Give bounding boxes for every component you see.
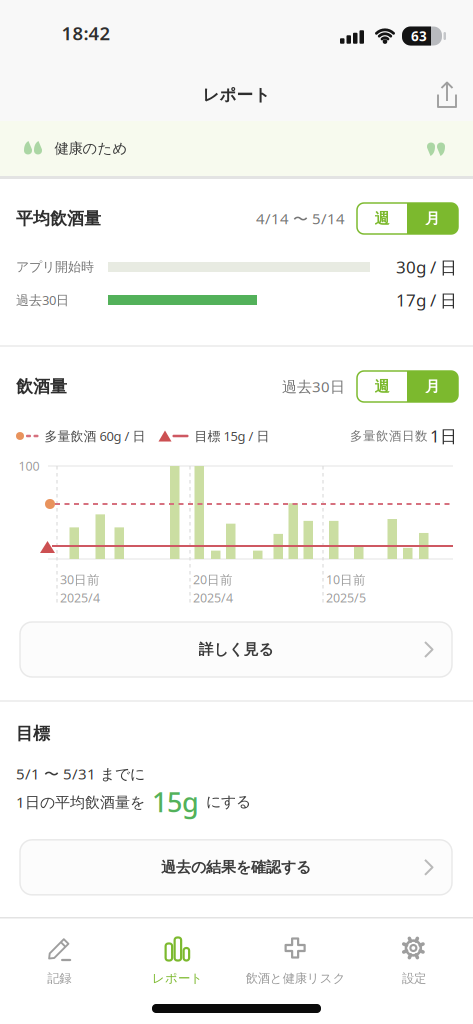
button[interactable]: 飲酒と健康リスク — [236, 934, 355, 986]
staticText: 週 — [374, 377, 389, 396]
button[interactable]: 詳しく見る — [20, 622, 452, 677]
staticText: 月 — [425, 377, 440, 396]
staticText: 過去30日 — [282, 376, 345, 397]
staticText: にする — [206, 792, 251, 811]
staticText: 多量飲酒 60g / 日 — [44, 427, 145, 445]
staticText: 多量飲酒日数 — [350, 428, 428, 444]
staticText: 目標 — [16, 723, 50, 744]
staticText: 18:42 — [61, 20, 110, 46]
staticText: レポート — [202, 85, 270, 105]
staticText: 1日の平均飲酒量を — [16, 792, 145, 812]
button[interactable]: 週 — [357, 203, 407, 234]
staticText: 記録 — [47, 970, 71, 986]
staticText: 4/14 〜 5/14 — [256, 208, 345, 229]
staticText: 健康のため — [54, 139, 127, 157]
staticText: 63 — [411, 27, 427, 45]
staticText: 15g — [152, 783, 199, 820]
button[interactable]: 過去の結果を確認する — [20, 840, 452, 895]
staticText: 設定 — [402, 970, 426, 986]
staticText: 1日 — [430, 424, 457, 448]
staticText: 飲酒量 — [16, 376, 67, 397]
staticText: 2025/4 — [193, 589, 233, 606]
staticText: 30g / 日 — [396, 255, 457, 279]
button[interactable]: 月 — [407, 203, 458, 234]
staticText: 5/1 〜 5/31 までに — [16, 763, 145, 784]
staticText: 目標 15g / 日 — [194, 427, 269, 445]
staticText: 詳しく見る — [198, 640, 273, 659]
staticText: 2025/5 — [326, 589, 366, 606]
staticText: レポート — [152, 970, 203, 986]
button[interactable]: Share — [435, 81, 459, 109]
button[interactable]: 月 — [407, 371, 458, 402]
staticText: 30日前 — [60, 571, 100, 588]
staticText: 2025/4 — [60, 589, 100, 606]
staticText: 17g / 日 — [396, 288, 457, 312]
staticText: アプリ開始時 — [16, 259, 94, 275]
button[interactable]: レポート — [118, 934, 236, 986]
staticText: 100 — [18, 457, 39, 474]
button[interactable]: 記録 — [0, 934, 118, 986]
staticText: 平均飲酒量 — [16, 208, 101, 229]
button[interactable]: 週 — [357, 371, 407, 402]
button[interactable]: 設定 — [355, 934, 473, 986]
staticText: 10日前 — [326, 571, 366, 588]
staticText: 20日前 — [193, 571, 233, 588]
staticText: 月 — [425, 209, 440, 228]
staticText: 過去の結果を確認する — [161, 858, 311, 877]
staticText: 週 — [374, 209, 389, 228]
staticText: 過去30日 — [16, 291, 69, 309]
staticText: 飲酒と健康リスク — [246, 970, 346, 986]
